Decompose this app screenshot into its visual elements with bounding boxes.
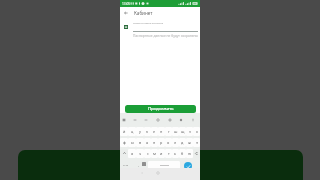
- staticText: ж: [188, 140, 191, 145]
- staticText: щ: [181, 129, 185, 134]
- staticText: б: [181, 151, 184, 156]
- button[interactable]: в: [136, 138, 144, 147]
- button[interactable]: Switch language: [142, 162, 146, 166]
- button[interactable]: Clipboard: [122, 118, 126, 122]
- staticText: з: [189, 129, 191, 134]
- staticText: ч: [139, 151, 142, 156]
- staticText: и: [160, 151, 163, 156]
- button[interactable]: Back: [141, 171, 145, 175]
- button[interactable]: Sticker: [156, 118, 160, 122]
- button[interactable]: н: [158, 127, 165, 136]
- button[interactable]: ,: [135, 161, 141, 168]
- button[interactable]: Emoji: [144, 118, 148, 122]
- staticText: у: [139, 129, 141, 134]
- button[interactable]: л: [172, 138, 179, 147]
- staticText: 13:05: [122, 2, 131, 6]
- staticText: Паспортные данные не будут сохранены: [133, 33, 199, 37]
- button[interactable]: ь: [172, 149, 179, 158]
- staticText: д: [181, 140, 184, 145]
- staticText: ш: [174, 129, 178, 134]
- button[interactable]: Shift: [120, 149, 128, 158]
- button[interactable]: ш: [172, 127, 179, 136]
- button[interactable]: Home: [156, 171, 160, 175]
- staticText: ь: [174, 151, 177, 156]
- staticText: к: [146, 129, 149, 134]
- staticText: м: [153, 151, 156, 156]
- button[interactable]: э: [193, 138, 200, 147]
- button[interactable]: Space: [148, 161, 180, 169]
- staticText: ?123: [123, 163, 129, 166]
- button[interactable]: о: [165, 138, 172, 147]
- staticText: р: [160, 140, 163, 145]
- button[interactable]: Settings: [168, 118, 172, 122]
- button[interactable]: ?123: [121, 161, 131, 168]
- button[interactable]: Send: [184, 162, 192, 170]
- button[interactable]: ч: [136, 149, 144, 158]
- button[interactable]: ц: [128, 127, 136, 136]
- staticText: ф: [123, 140, 126, 145]
- button[interactable]: ф: [120, 138, 128, 147]
- staticText: Кабинет: [134, 10, 153, 16]
- staticText: г: [168, 129, 170, 134]
- button[interactable]: щ: [179, 127, 186, 136]
- staticText: п: [153, 140, 156, 145]
- staticText: х: [196, 129, 198, 134]
- staticText: Серия и номер паспорта: [133, 21, 164, 24]
- button[interactable]: з: [186, 127, 193, 136]
- staticText: т: [168, 151, 170, 156]
- button[interactable]: т: [165, 149, 172, 158]
- button[interactable]: р: [158, 138, 165, 147]
- button[interactable]: ж: [186, 138, 193, 147]
- button[interactable]: й: [120, 127, 128, 136]
- button[interactable]: и: [158, 149, 165, 158]
- button[interactable]: Translate: [179, 118, 183, 122]
- button[interactable]: Back: [121, 7, 130, 18]
- staticText: е: [153, 129, 156, 134]
- button[interactable]: п: [151, 138, 158, 147]
- staticText: ц: [131, 129, 134, 134]
- staticText: ,: [138, 163, 139, 167]
- button[interactable]: я: [128, 149, 136, 158]
- staticText: н: [160, 129, 163, 134]
- button[interactable]: Voice input: [191, 118, 195, 122]
- button[interactable]: м: [151, 149, 158, 158]
- button[interactable]: е: [151, 127, 158, 136]
- staticText: ю: [188, 151, 192, 156]
- button[interactable]: Gif: [133, 118, 137, 122]
- button[interactable]: ы: [128, 138, 136, 147]
- button[interactable]: д: [179, 138, 186, 147]
- button[interactable]: г: [165, 127, 172, 136]
- button[interactable]: б: [179, 149, 186, 158]
- button[interactable]: Backspace: [193, 149, 200, 158]
- button[interactable]: с: [144, 149, 151, 158]
- staticText: с: [147, 151, 149, 156]
- button[interactable]: к: [144, 127, 151, 136]
- button[interactable]: ю: [186, 149, 193, 158]
- staticText: й: [123, 129, 126, 134]
- staticText: л: [174, 140, 177, 145]
- staticText: ы: [131, 140, 134, 145]
- staticText: Продолжить: [148, 106, 174, 112]
- staticText: о: [167, 140, 170, 145]
- staticText: в: [139, 140, 142, 145]
- button[interactable]: х: [193, 127, 200, 136]
- button[interactable]: Продолжить: [125, 105, 196, 113]
- staticText: я: [131, 151, 134, 156]
- staticText: э: [196, 140, 198, 145]
- button[interactable]: а: [144, 138, 151, 147]
- staticText: а: [146, 140, 149, 145]
- button[interactable]: у: [136, 127, 144, 136]
